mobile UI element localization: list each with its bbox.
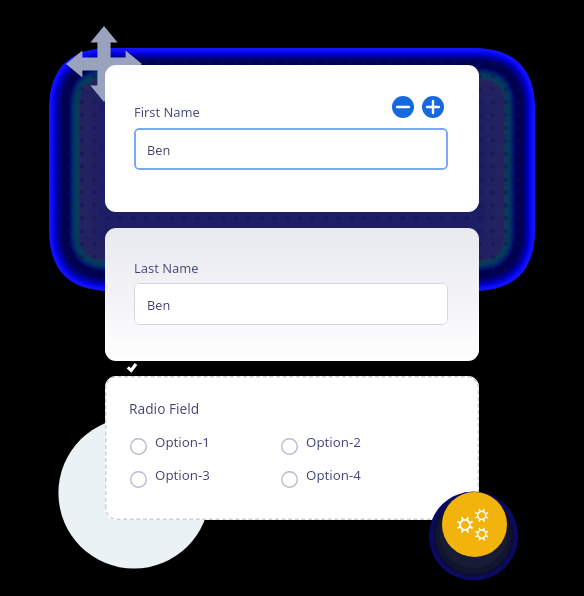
button[interactable]: Last Name	[105, 228, 479, 361]
button[interactable]: Add	[422, 96, 444, 118]
staticText: Last Name	[134, 259, 199, 277]
staticText: Option-4	[306, 466, 361, 484]
button[interactable]: Option-1	[128, 429, 210, 455]
button[interactable]: Settings	[442, 492, 507, 557]
staticText: Option-1	[155, 433, 210, 451]
staticText: Ben	[147, 141, 171, 158]
staticText: Option-3	[155, 466, 210, 484]
staticText: Ben	[147, 296, 171, 313]
button[interactable]: First Name	[105, 65, 479, 212]
button[interactable]: Radio Field	[105, 376, 479, 520]
button[interactable]: Option-3	[128, 462, 210, 488]
staticText: First Name	[134, 103, 200, 121]
button[interactable]: Option-4	[279, 462, 361, 488]
button[interactable]: Remove	[392, 96, 414, 118]
button[interactable]: Option-2	[279, 429, 361, 455]
staticText: Radio Field	[129, 399, 200, 418]
staticText: Option-2	[306, 433, 361, 451]
button[interactable]: Ben	[134, 128, 448, 170]
button[interactable]: Move field	[66, 26, 142, 102]
button[interactable]: Ben	[134, 283, 448, 325]
